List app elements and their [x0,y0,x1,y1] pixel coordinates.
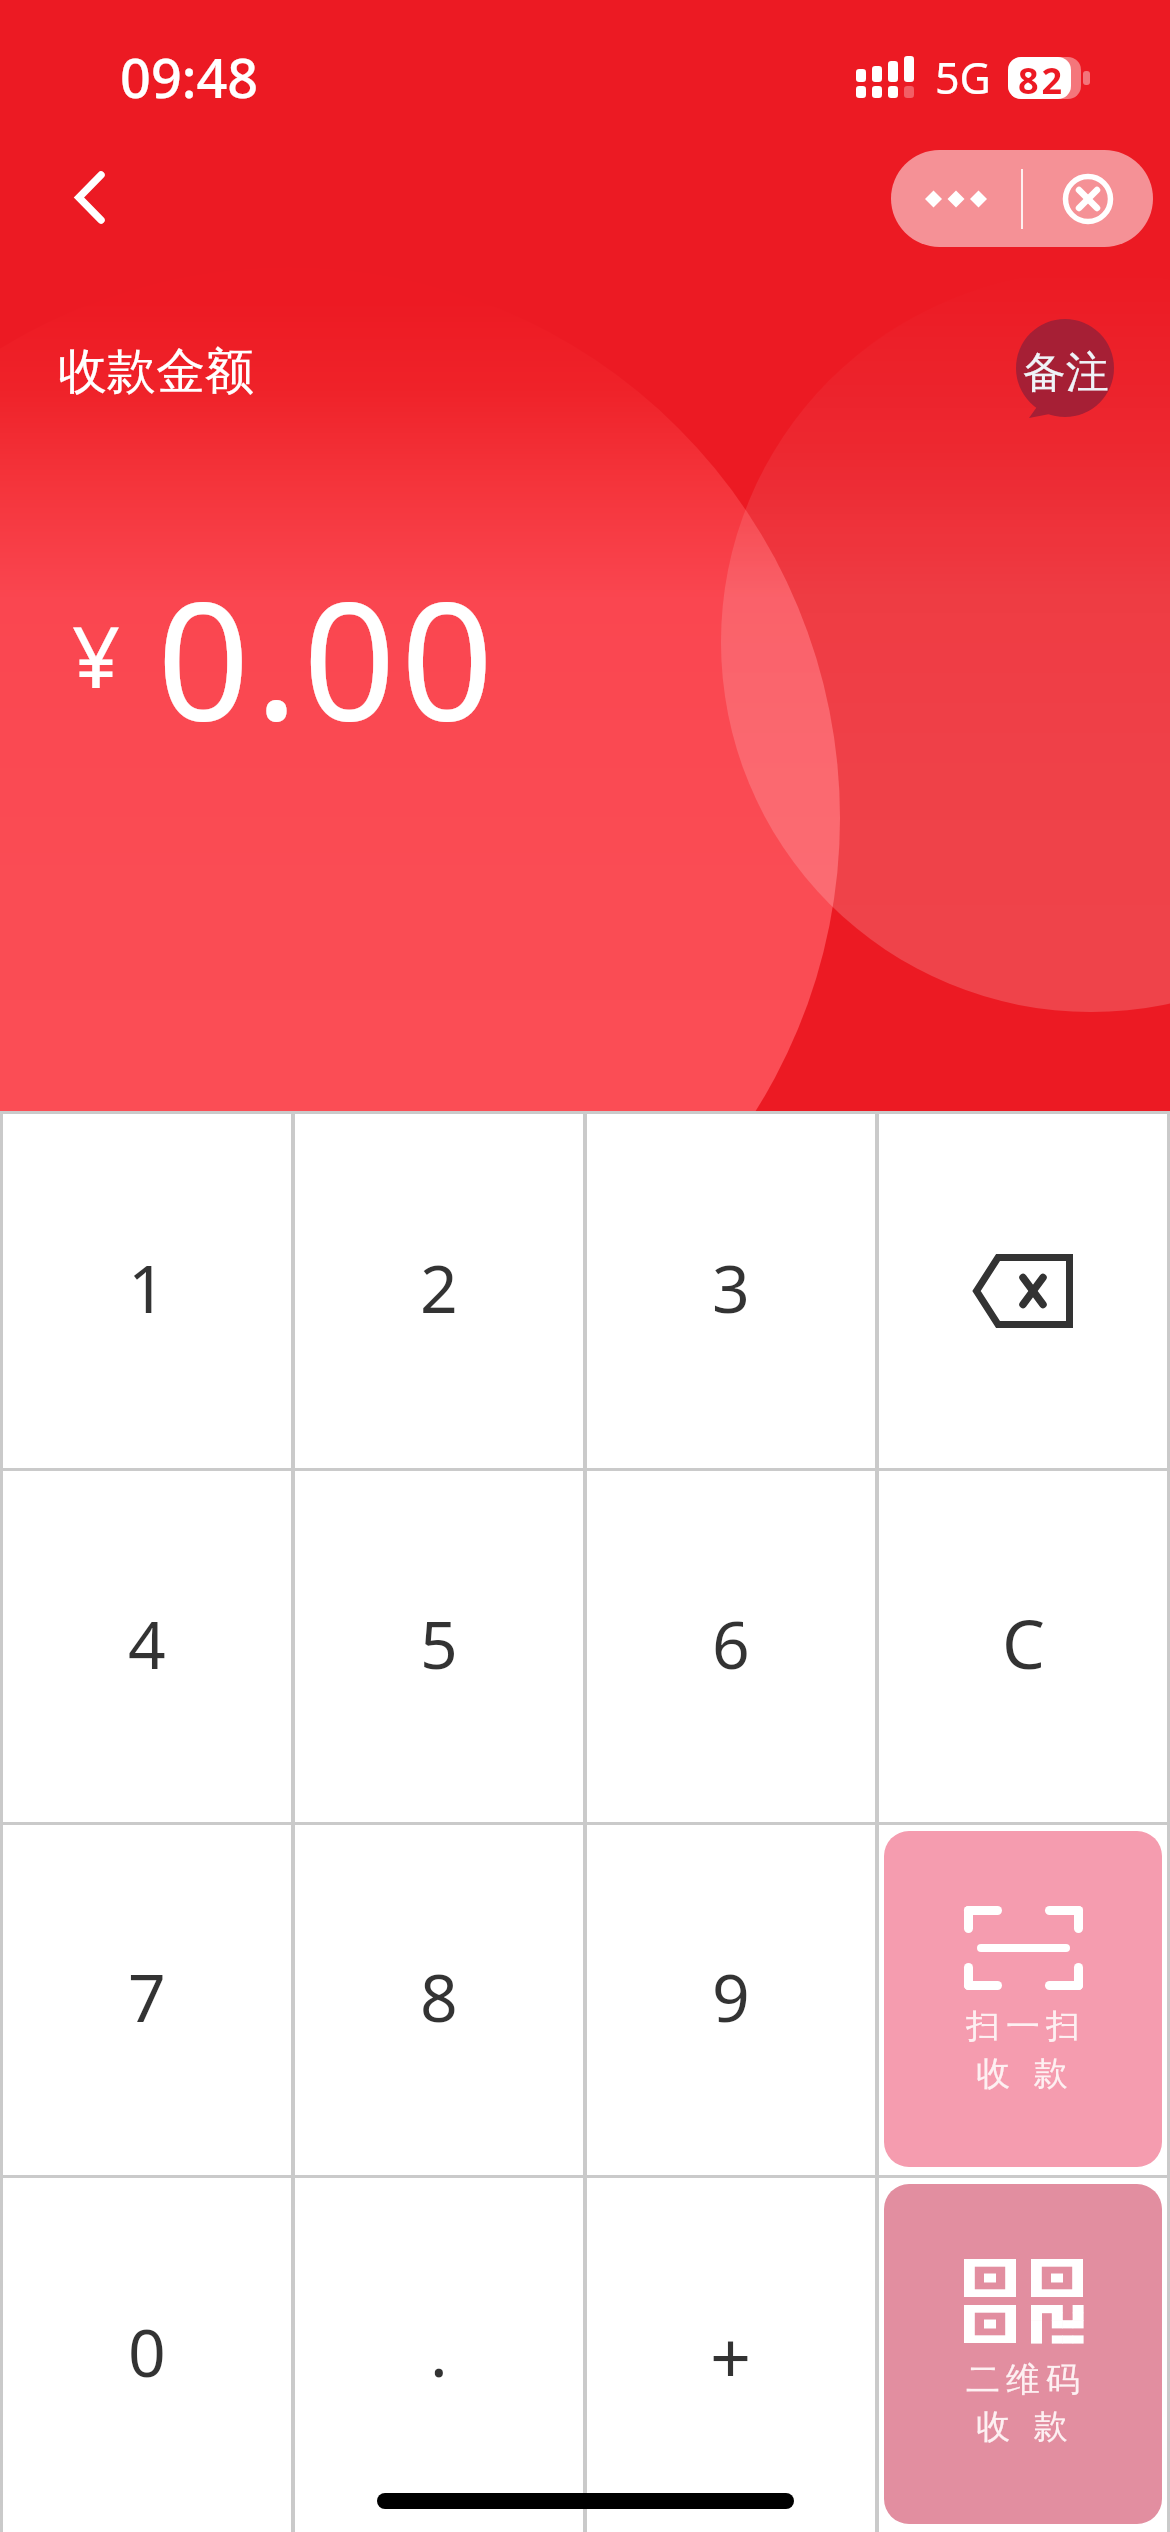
button[interactable]: Close [1023,150,1153,247]
button[interactable]: Back [30,150,126,246]
staticText: 收 款 [976,2049,1070,2095]
button[interactable]: Backspace [879,1114,1167,1468]
button[interactable]: 5 [295,1471,583,1822]
button[interactable]: 8 [295,1825,583,2175]
staticText: 1 [128,1242,166,1332]
staticText: 6 [712,1598,750,1688]
staticText: 5 [420,1598,458,1688]
button[interactable]: 7 [3,1825,291,2175]
button[interactable]: . [295,2178,583,2532]
button[interactable]: 2 [295,1114,583,1468]
staticText: 收款金额 [58,341,254,403]
button[interactable]: 二维码 [884,2184,1162,2524]
button[interactable]: + [587,2178,875,2532]
button[interactable]: C [879,1471,1167,1822]
button[interactable]: 备注 [1016,317,1116,427]
staticText: C [1002,1596,1045,1689]
staticText: 备注 [1023,346,1109,400]
staticText: 09:48 [120,40,259,114]
button[interactable]: 3 [587,1114,875,1468]
staticText: . [430,2306,448,2396]
staticText: 5G [935,48,991,107]
staticText: 3 [712,1242,750,1332]
staticText: 0 [128,2306,166,2396]
staticText: 扫一扫 [963,2005,1083,2048]
staticText: 9 [712,1951,750,2041]
staticText: 8 [420,1951,458,2041]
button[interactable]: 扫一扫 [884,1831,1162,2167]
button[interactable]: More [891,150,1021,247]
button[interactable]: 6 [587,1471,875,1822]
staticText: 82 [1018,56,1066,105]
staticText: ¥ [72,598,121,712]
staticText: 二维码 [963,2358,1083,2401]
button[interactable]: 0 [3,2178,291,2532]
button[interactable]: 1 [3,1114,291,1468]
button[interactable]: 4 [3,1471,291,1822]
button[interactable]: 9 [587,1825,875,2175]
staticText: 7 [128,1951,166,2041]
staticText: + [710,2307,752,2405]
staticText: 2 [420,1242,458,1332]
staticText: 4 [128,1598,166,1688]
staticText: 0.00 [157,547,499,768]
staticText: 收 款 [976,2402,1070,2448]
